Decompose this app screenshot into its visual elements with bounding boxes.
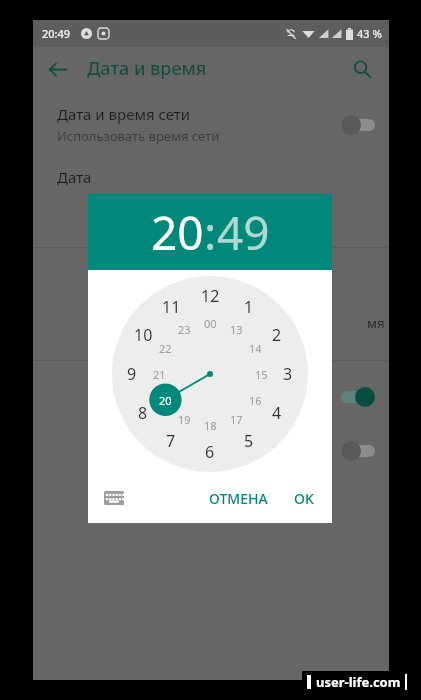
- button[interactable]: Keyboard input: [98, 482, 130, 514]
- staticText: Дата и время сети: [57, 104, 191, 124]
- staticText: 12: [201, 285, 220, 307]
- staticText: 23: [178, 322, 191, 337]
- staticText: 7: [166, 430, 176, 452]
- staticText: Дата: [57, 167, 92, 187]
- staticText: 5: [244, 430, 254, 452]
- staticText: 8: [138, 402, 148, 424]
- staticText: 17: [230, 412, 243, 427]
- button[interactable]: OK: [286, 481, 322, 516]
- button[interactable]: Clock face, 20 hours selected: [112, 276, 308, 472]
- button[interactable]: Back: [38, 50, 76, 88]
- staticText: 3: [283, 363, 293, 385]
- staticText: 4: [272, 402, 282, 424]
- staticText: :: [204, 201, 217, 264]
- staticText: 15: [255, 367, 268, 382]
- button[interactable]: 49: [217, 201, 270, 264]
- button[interactable]: Toggle off: [341, 441, 375, 461]
- staticText: OK: [294, 489, 314, 508]
- staticText: 6: [205, 441, 215, 463]
- staticText: 16: [249, 393, 262, 408]
- staticText: 43 %: [357, 26, 382, 41]
- staticText: Использовать время сети: [57, 127, 220, 145]
- button[interactable]: Toggle off: [341, 115, 375, 135]
- staticText: 10: [134, 324, 153, 346]
- button[interactable]: Дата и время сети: [33, 104, 389, 145]
- staticText: 14: [249, 341, 262, 356]
- staticText: мя: [367, 314, 385, 332]
- staticText: 13: [230, 322, 243, 337]
- button[interactable]: Toggle on: [33, 387, 389, 407]
- staticText: 18: [204, 418, 217, 433]
- button[interactable]: ОТМЕНА: [201, 481, 276, 516]
- staticText: 1: [244, 296, 254, 318]
- button[interactable]: 20: [151, 201, 204, 264]
- staticText: 20: [159, 393, 172, 408]
- staticText: 21: [153, 367, 166, 382]
- button[interactable]: Toggle off: [33, 441, 389, 461]
- staticText: 19: [178, 412, 191, 427]
- staticText: Дата и время: [87, 56, 207, 81]
- staticText: ОТМЕНА: [209, 489, 268, 508]
- button[interactable]: Toggle on: [341, 387, 375, 407]
- staticText: 00: [204, 316, 217, 331]
- staticText: 2: [272, 324, 282, 346]
- staticText: user-life.com: [316, 673, 401, 691]
- staticText: 9: [127, 363, 137, 385]
- staticText: 11: [162, 296, 181, 318]
- staticText: 20:49: [42, 26, 71, 41]
- button[interactable]: Search: [343, 50, 381, 88]
- staticText: 22: [159, 341, 172, 356]
